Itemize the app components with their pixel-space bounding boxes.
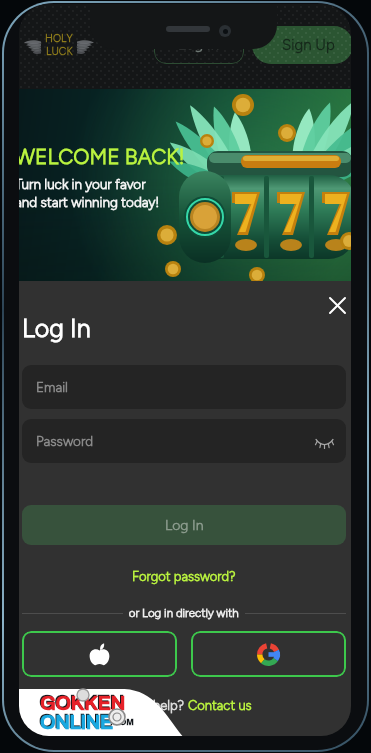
staticText: HOLY [45, 32, 73, 45]
staticText: Log In [22, 313, 91, 343]
button[interactable]: Password [22, 419, 346, 463]
button[interactable]: Forgot password? [22, 566, 346, 588]
staticText: or Log in directly with [123, 606, 245, 620]
staticText: .COM [110, 717, 134, 727]
staticText: Log In [178, 35, 220, 53]
staticText: Contact us [188, 698, 252, 714]
button[interactable]: Sign in with Google [191, 631, 346, 677]
staticText: Turn luck in your favor and start winnin… [19, 176, 160, 211]
staticText: GOKKEN [40, 692, 125, 714]
button[interactable]: Show password [312, 429, 336, 453]
staticText: Log In [165, 517, 204, 534]
staticText: Forgot password? [132, 569, 236, 585]
staticText: WELCOME BACK! [19, 144, 185, 169]
staticText: Email [36, 379, 68, 395]
button[interactable]: Log In [22, 505, 346, 545]
staticText: GOKKEN [39, 691, 124, 713]
button[interactable]: Sign Up [252, 26, 351, 64]
staticText: Sign Up [282, 36, 335, 54]
button[interactable]: Email [22, 365, 346, 409]
staticText: ONLINE [39, 710, 112, 732]
staticText: Password [36, 433, 94, 449]
staticText: LUCK [46, 45, 73, 56]
staticText: ONLINE [40, 711, 113, 733]
button[interactable]: Sign in with Apple [22, 631, 177, 677]
button[interactable]: Close [322, 290, 351, 320]
button[interactable]: Holy Luck [22, 32, 96, 56]
button[interactable]: Contact us [188, 698, 252, 714]
button[interactable]: Log In [154, 24, 244, 64]
staticText: Need help? [118, 698, 188, 714]
